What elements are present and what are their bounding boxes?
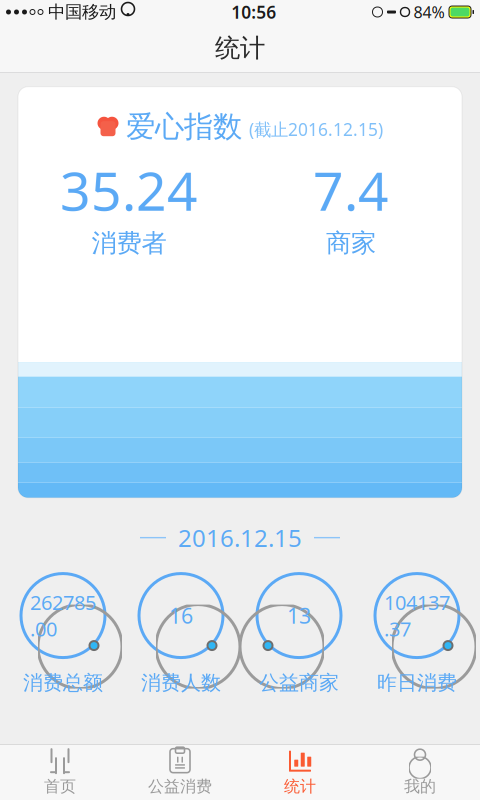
staticText: 爱心指数: [126, 109, 242, 145]
staticText: 中国移动: [48, 1, 116, 23]
staticText: 商家: [326, 228, 376, 259]
staticText: 13: [287, 601, 311, 630]
staticText: 7.4: [313, 155, 389, 225]
button[interactable]: 公益消费: [120, 743, 240, 800]
staticText: 16: [169, 601, 193, 630]
staticText: 35.24: [60, 155, 198, 225]
staticText: (截止2016.12.15): [249, 118, 383, 141]
staticText: 84%: [413, 1, 444, 23]
button[interactable]: 统计: [240, 743, 360, 800]
staticText: 10:56: [231, 0, 276, 23]
staticText: 104137.37: [384, 589, 450, 642]
staticText: 昨日消费: [377, 671, 457, 695]
staticText: 统计: [215, 32, 265, 63]
staticText: 公益消费: [148, 777, 212, 796]
staticText: 消费者: [91, 228, 166, 259]
button[interactable]: 我的: [360, 743, 480, 800]
staticText: 公益商家: [259, 671, 339, 695]
staticText: 消费人数: [141, 671, 221, 695]
button[interactable]: 首页: [0, 743, 120, 800]
staticText: 2016.12.15: [178, 522, 302, 554]
staticText: 首页: [44, 777, 76, 796]
staticText: 消费总额: [23, 671, 103, 695]
staticText: 262785.00: [30, 589, 96, 642]
staticText: 我的: [404, 777, 436, 796]
staticText: 统计: [284, 777, 316, 796]
